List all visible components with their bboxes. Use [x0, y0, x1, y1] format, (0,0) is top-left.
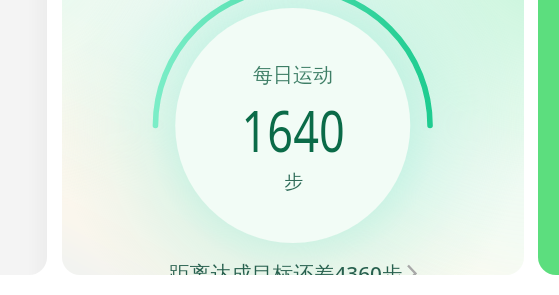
button[interactable]: 距离达成目标还差4360步	[169, 259, 417, 275]
staticText: 每日运动	[253, 63, 333, 88]
button[interactable]	[538, 0, 559, 275]
staticText: 1640	[242, 92, 345, 168]
staticText: 步	[284, 170, 303, 194]
staticText: 距离达成目标还差4360步	[169, 259, 403, 275]
button[interactable]: 每日运动	[62, 0, 524, 275]
